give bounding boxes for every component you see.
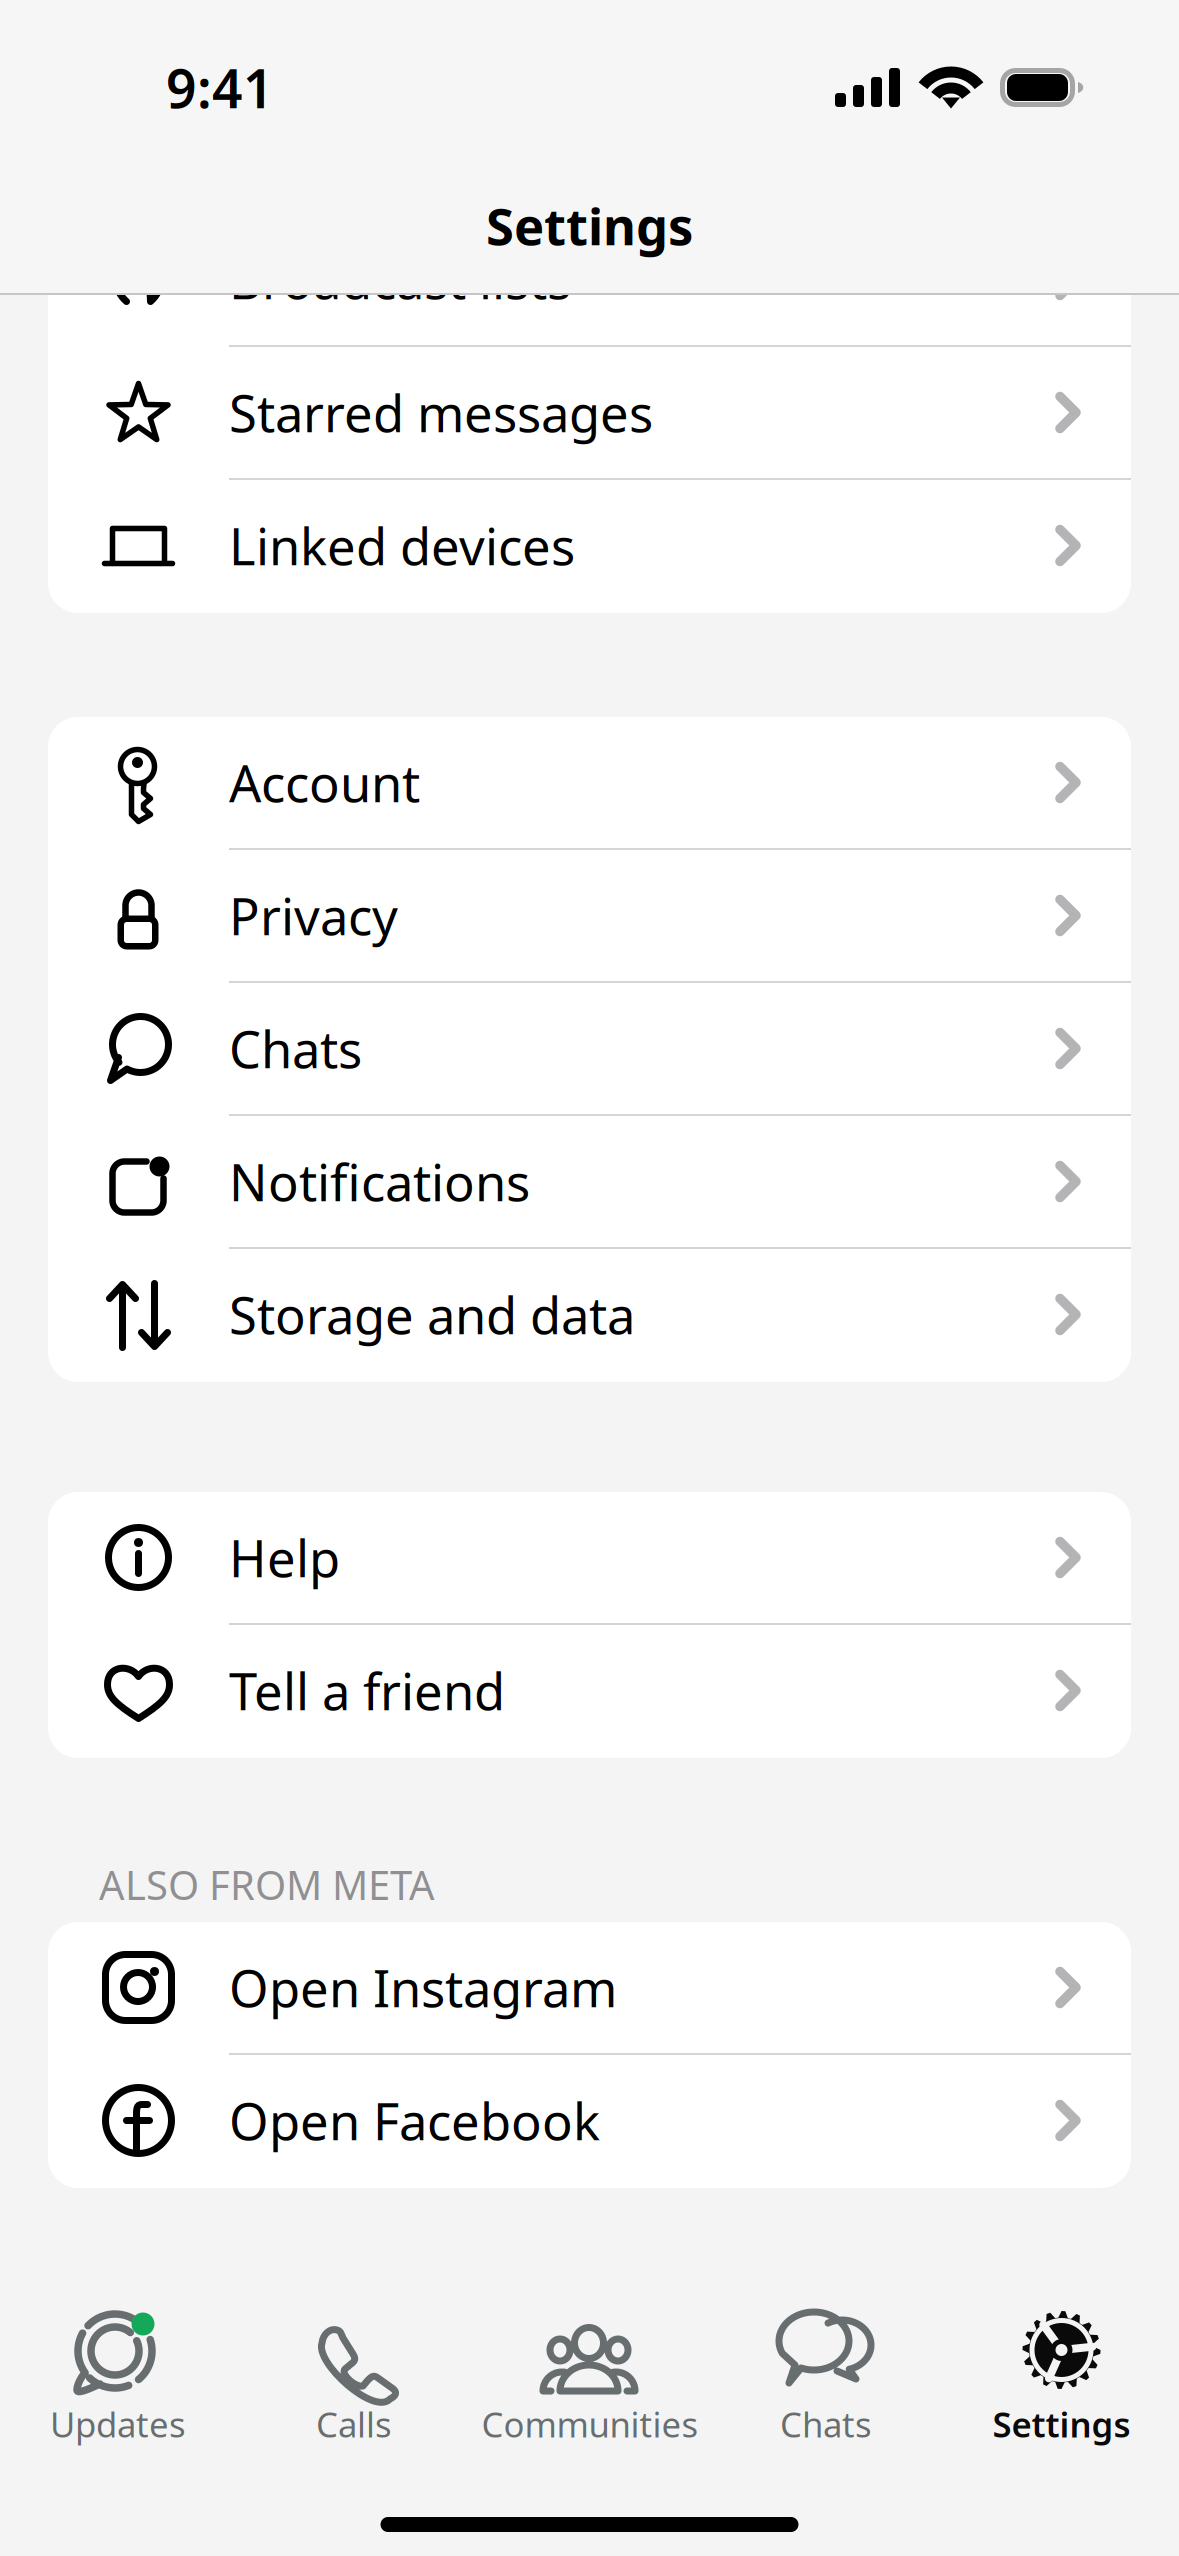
button[interactable]: Notifications (48, 1116, 1131, 1249)
button[interactable]: Broadcast lists (48, 214, 1131, 347)
button[interactable]: Linked devices (48, 480, 1131, 613)
staticText: ALSO FROM META (99, 1858, 435, 1911)
staticText: Linked devices (229, 512, 575, 579)
button[interactable]: Updates (0, 2301, 236, 2449)
button[interactable]: Account (48, 717, 1131, 850)
button[interactable]: Open Facebook (48, 2055, 1131, 2188)
staticText: Communities (481, 2401, 698, 2447)
button[interactable]: Settings (944, 2301, 1179, 2449)
staticText: Account (229, 749, 420, 816)
staticText: Open Instagram (229, 1954, 617, 2021)
button[interactable]: Help (48, 1492, 1131, 1625)
button[interactable]: Open Instagram (48, 1922, 1131, 2055)
button[interactable]: Storage and data (48, 1249, 1131, 1382)
button[interactable]: Privacy (48, 850, 1131, 983)
button[interactable]: Chats (48, 983, 1131, 1116)
button[interactable]: Starred messages (48, 347, 1131, 480)
staticText: Chats (229, 1015, 362, 1082)
staticText: Settings (992, 2401, 1130, 2447)
button[interactable]: Tell a friend (48, 1625, 1131, 1758)
staticText: Starred messages (229, 379, 653, 446)
staticText: Broadcast lists (229, 246, 571, 313)
staticText: Updates (50, 2401, 186, 2447)
button[interactable]: Calls (236, 2301, 472, 2449)
staticText: Tell a friend (229, 1657, 505, 1724)
staticText: Help (229, 1524, 340, 1591)
staticText: 9:41 (166, 52, 274, 123)
button[interactable]: Chats (708, 2301, 944, 2449)
staticText: Calls (316, 2401, 392, 2447)
button[interactable]: Communities (472, 2301, 708, 2449)
staticText: Storage and data (229, 1281, 635, 1348)
staticText: Settings (486, 192, 693, 259)
staticText: Notifications (229, 1148, 530, 1215)
staticText: Privacy (229, 882, 398, 949)
staticText: Chats (780, 2401, 872, 2447)
staticText: Open Facebook (229, 2087, 600, 2154)
